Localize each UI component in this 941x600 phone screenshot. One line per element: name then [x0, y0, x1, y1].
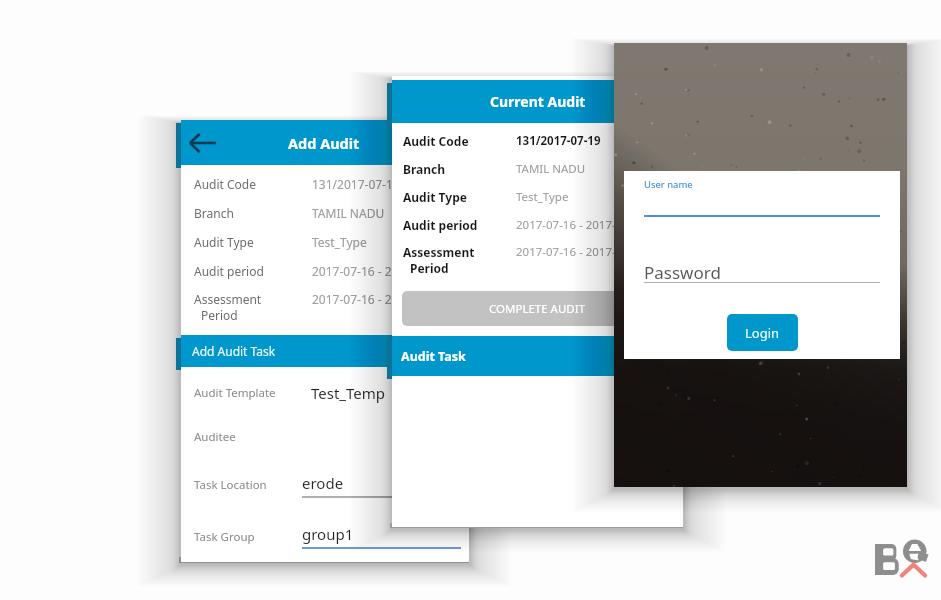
staticText: Period: [410, 260, 449, 276]
staticText: 2017-07-16 - 2017-0: [516, 217, 623, 233]
staticText: Period: [201, 307, 238, 323]
staticText: Audit period: [403, 217, 516, 233]
button[interactable]: Add Audit Task: [181, 335, 469, 367]
button[interactable]: Back: [185, 125, 221, 161]
staticText: Test_Temp: [311, 383, 386, 403]
staticText: Auditee: [194, 429, 302, 445]
staticText: Task Location: [194, 477, 302, 493]
staticText: 131/2017-07-19: [516, 133, 601, 149]
staticText: Password: [644, 261, 721, 284]
staticText: Branch: [194, 205, 312, 221]
staticText: Audit Type: [403, 189, 516, 205]
button[interactable]: Audit Task: [392, 336, 683, 376]
staticText: Add Audit Task: [192, 343, 276, 359]
staticText: Branch: [403, 161, 516, 177]
staticText: Audit Template: [194, 385, 311, 401]
staticText: 2017-07-16 - 20: [312, 291, 399, 307]
staticText: Current Audit: [490, 92, 586, 111]
button[interactable]: COMPLETE AUDIT: [402, 291, 673, 326]
staticText: 2017-07-16 - 20: [312, 263, 399, 279]
staticText: Task Group: [194, 529, 302, 545]
staticText: Audit Code: [403, 133, 516, 149]
staticText: TAMIL NADU: [516, 161, 586, 177]
staticText: TAMIL NADU: [312, 205, 385, 221]
staticText: Login: [745, 324, 780, 342]
staticText: Audit Type: [194, 234, 312, 250]
button[interactable]: Login: [727, 314, 798, 351]
staticText: Audit period: [194, 263, 312, 279]
staticText: Audit Task: [401, 348, 466, 365]
staticText: Test_Type: [312, 234, 367, 250]
staticText: 131/2017-07-19: [312, 176, 400, 192]
staticText: User name: [644, 178, 693, 191]
staticText: Audit Code: [194, 176, 312, 192]
staticText: 2017-07-16 - 2017-0: [516, 244, 623, 260]
staticText: group1: [302, 524, 354, 544]
staticText: Test_Type: [516, 189, 569, 205]
staticText: COMPLETE AUDIT: [489, 301, 586, 317]
staticText: Add Audit: [288, 133, 360, 153]
staticText: erode: [302, 473, 344, 493]
staticText: Assessment: [403, 244, 475, 260]
staticText: Assessment: [194, 291, 262, 307]
